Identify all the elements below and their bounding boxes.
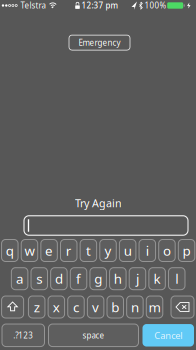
button[interactable]: Emergency — [69, 35, 130, 50]
button[interactable]: n — [127, 296, 143, 318]
button[interactable]: y — [100, 239, 116, 261]
staticText: r — [66, 242, 72, 259]
button[interactable]: j — [129, 268, 146, 290]
button[interactable]: e — [41, 239, 57, 261]
staticText: g — [94, 270, 102, 287]
staticText: a — [16, 270, 23, 287]
staticText: 12:37 pm — [81, 0, 118, 11]
staticText: Telstra — [20, 0, 45, 11]
button[interactable]: m — [146, 296, 163, 318]
button[interactable]: Cancel — [142, 324, 194, 347]
staticText: u — [124, 242, 132, 259]
staticText: t — [86, 242, 91, 259]
button[interactable]: p — [178, 239, 195, 261]
button[interactable]: s — [31, 268, 47, 290]
staticText: w — [24, 242, 34, 259]
button[interactable]: o — [159, 239, 175, 261]
staticText: b — [111, 298, 119, 316]
staticText: Cancel — [154, 329, 182, 341]
button[interactable]: r — [60, 239, 77, 261]
button[interactable]: u — [119, 239, 136, 261]
button[interactable]: d — [51, 268, 67, 290]
button[interactable]: x — [48, 296, 65, 318]
staticText: z — [34, 298, 40, 316]
button[interactable]: k — [149, 268, 165, 290]
staticText: p — [183, 242, 191, 259]
button[interactable]: q — [2, 239, 18, 261]
button[interactable]: v — [87, 296, 104, 318]
staticText: q — [6, 242, 14, 259]
staticText: l — [175, 270, 178, 287]
button[interactable]: l — [168, 268, 185, 290]
staticText: e — [45, 242, 53, 259]
staticText: k — [154, 270, 161, 287]
staticText: n — [131, 298, 139, 316]
staticText: 100% — [144, 0, 166, 11]
staticText: i — [146, 242, 149, 259]
button[interactable]: i — [139, 239, 156, 261]
button[interactable]: z — [28, 296, 45, 318]
staticText: d — [55, 270, 63, 287]
button[interactable]: f — [70, 268, 87, 290]
button[interactable]: c — [68, 296, 84, 318]
button[interactable]: t — [80, 239, 97, 261]
staticText: s — [36, 270, 42, 287]
staticText: v — [92, 298, 99, 316]
button[interactable]: g — [90, 268, 106, 290]
button[interactable]: Delete — [171, 296, 194, 318]
staticText: y — [104, 242, 111, 259]
button[interactable]: space — [48, 324, 138, 347]
button[interactable]: h — [110, 268, 126, 290]
staticText: c — [73, 298, 79, 316]
staticText: m — [148, 298, 160, 316]
staticText: space — [82, 330, 104, 341]
button[interactable]: Passcode — [24, 216, 188, 235]
staticText: j — [136, 270, 139, 287]
staticText: h — [114, 270, 122, 287]
button[interactable]: a — [11, 268, 28, 290]
button[interactable]: b — [107, 296, 123, 318]
staticText: Emergency — [78, 37, 120, 48]
button[interactable]: .?123 — [2, 324, 44, 347]
staticText: .?123 — [13, 330, 33, 341]
staticText: x — [53, 298, 60, 316]
staticText: o — [163, 242, 171, 259]
button[interactable]: Shift — [2, 296, 24, 318]
staticText: Try Again — [75, 196, 122, 210]
staticText: f — [76, 270, 81, 287]
button[interactable]: w — [21, 239, 38, 261]
